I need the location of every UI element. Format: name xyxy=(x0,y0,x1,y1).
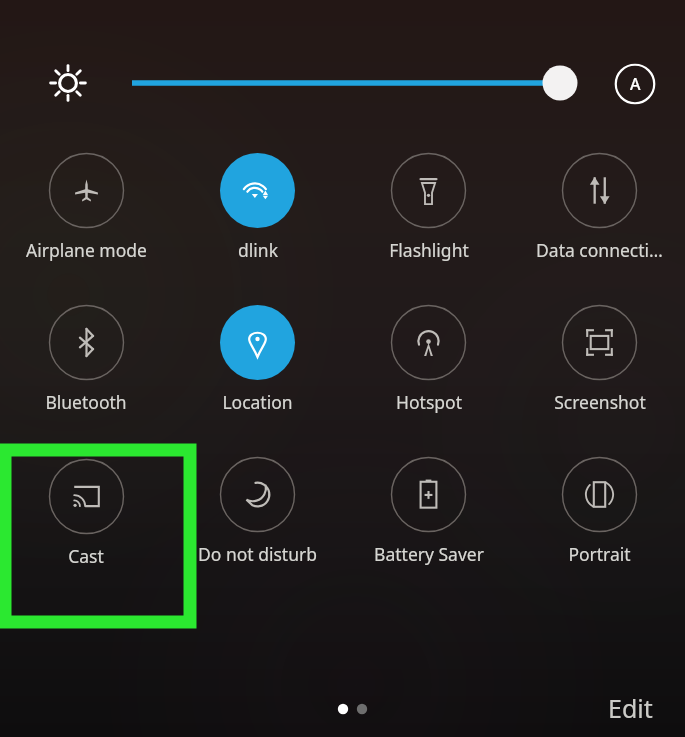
staticText: dlink xyxy=(238,238,278,262)
staticText: Airplane mode xyxy=(26,238,147,262)
staticText: Flashlight xyxy=(389,238,469,262)
button[interactable]: Screenshot xyxy=(514,292,685,414)
button[interactable]: Do not disturb xyxy=(172,444,343,566)
staticText: Hotspot xyxy=(396,390,462,414)
staticText: Data connecti… xyxy=(536,238,663,262)
button[interactable]: Battery Saver xyxy=(343,444,514,566)
button[interactable]: Brightness slider xyxy=(124,58,589,108)
staticText: Bluetooth xyxy=(45,390,127,414)
button[interactable]: Hotspot xyxy=(343,292,514,414)
button[interactable]: Portrait xyxy=(514,444,685,566)
staticText: Cast xyxy=(68,544,104,568)
button[interactable]: dlink xyxy=(172,140,343,262)
staticText: Do not disturb xyxy=(198,542,317,566)
staticText: Portrait xyxy=(568,542,631,566)
button[interactable]: Edit xyxy=(598,685,663,731)
button[interactable]: Cast xyxy=(0,446,172,624)
button[interactable]: Airplane mode xyxy=(0,140,172,262)
button[interactable]: Flashlight xyxy=(343,140,514,262)
button[interactable]: Brightness xyxy=(42,57,94,109)
staticText: Location xyxy=(222,390,293,414)
button[interactable]: Data connecti… xyxy=(514,140,685,262)
button[interactable]: Location xyxy=(172,292,343,414)
button[interactable]: Bluetooth xyxy=(0,292,172,414)
staticText: Screenshot xyxy=(554,390,646,414)
staticText: Edit xyxy=(608,691,653,725)
staticText: A xyxy=(630,73,641,95)
button[interactable]: Auto brightness xyxy=(609,58,661,110)
staticText: Battery Saver xyxy=(374,542,484,566)
